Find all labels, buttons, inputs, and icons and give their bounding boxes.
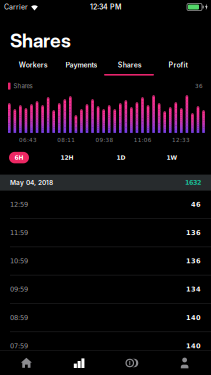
staticText: 06:43 [19, 137, 37, 143]
staticText: 11:06 [134, 137, 152, 143]
staticText: Carrier [4, 3, 28, 11]
staticText: 36 [195, 83, 203, 89]
staticText: 11:59 [10, 229, 28, 237]
button[interactable]: 12H [57, 152, 77, 163]
staticText: Shares [118, 61, 142, 69]
button[interactable]: Payments [57, 56, 105, 74]
staticText: May 04, 2018 [10, 179, 53, 187]
staticText: Workers [19, 61, 48, 69]
staticText: 08:11 [57, 137, 75, 143]
staticText: 10:59 [10, 257, 28, 265]
button[interactable]: Account [158, 351, 211, 375]
staticText: 136 [186, 229, 201, 237]
staticText: 09:38 [95, 137, 113, 143]
staticText: 12H [60, 154, 73, 161]
staticText: 12:59 [10, 201, 28, 208]
staticText: 1D [116, 154, 125, 161]
staticText: 46 [191, 201, 201, 208]
staticText: Shares [10, 29, 71, 52]
button[interactable]: 1D [111, 152, 131, 163]
staticText: 134 [186, 285, 201, 293]
button[interactable]: Shares [105, 56, 154, 74]
button[interactable]: Workers [9, 56, 57, 74]
staticText: 09:59 [10, 285, 28, 293]
staticText: 12:33 [172, 137, 190, 143]
staticText: 07:59 [10, 342, 28, 350]
staticText: 1632 [185, 179, 201, 186]
staticText: Payments [65, 61, 97, 69]
staticText: 08:59 [10, 314, 28, 321]
button[interactable]: Statistics [53, 351, 106, 375]
button[interactable]: Home [0, 351, 53, 375]
button[interactable]: Payouts [105, 351, 158, 375]
staticText: 140 [186, 342, 201, 350]
staticText: 1W [166, 154, 177, 161]
button[interactable]: Profit [154, 56, 202, 74]
staticText: 12:34 PM [90, 3, 121, 11]
staticText: 6H [14, 154, 23, 161]
button[interactable]: 6H [9, 152, 29, 163]
staticText: 136 [186, 257, 201, 265]
staticText: Shares [13, 82, 32, 90]
staticText: 140 [186, 314, 201, 321]
staticText: Profit [168, 61, 187, 69]
button[interactable]: 1W [162, 152, 182, 163]
